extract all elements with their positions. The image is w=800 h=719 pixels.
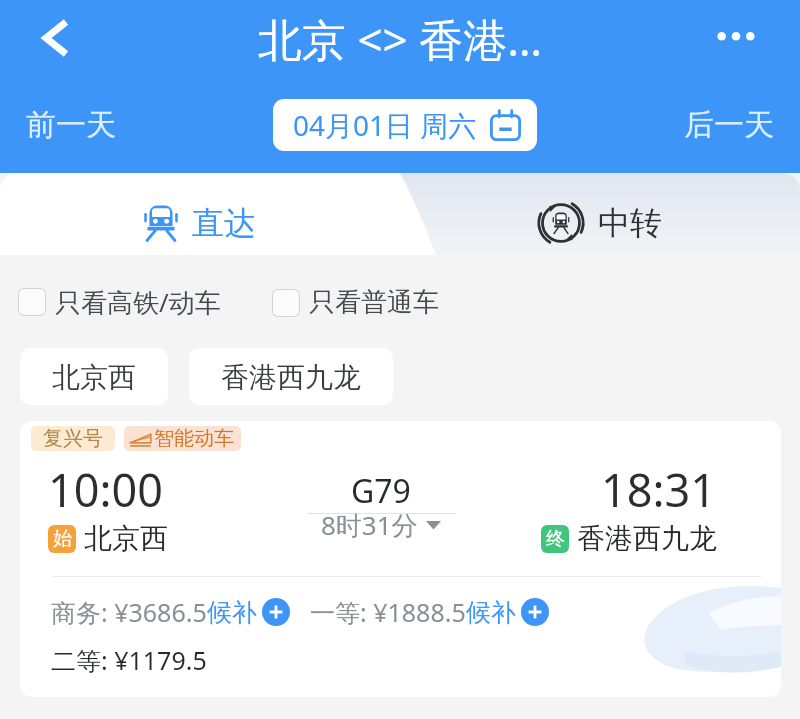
staticText: 直达 xyxy=(192,203,256,243)
staticText: 北京 <> 香港… xyxy=(258,9,543,69)
button[interactable]: 04月01日 周六 xyxy=(273,99,537,151)
staticText: 04月01日 周六 xyxy=(293,106,477,144)
staticText: 二等: ¥1179.5 xyxy=(51,643,207,677)
button[interactable]: More options xyxy=(708,10,764,66)
staticText: 香港西九龙 xyxy=(577,521,717,556)
staticText: 智能动车 xyxy=(154,426,234,451)
button[interactable]: Add waitlist xyxy=(262,598,290,626)
staticText: 10:00 xyxy=(48,459,164,520)
staticText: 后一天 xyxy=(684,106,774,144)
button[interactable]: 复兴号 xyxy=(20,421,781,697)
staticText: 18:31 xyxy=(601,459,717,520)
button[interactable]: 后一天 xyxy=(672,96,786,154)
staticText: 候补 xyxy=(207,597,257,628)
button[interactable]: 只看高铁/动车 xyxy=(10,276,229,328)
staticText: 商务: ¥3686.5 xyxy=(51,595,207,629)
staticText: 始 xyxy=(53,527,72,551)
staticText: 8时31分 xyxy=(321,507,418,543)
staticText: 香港西九龙 xyxy=(221,360,361,395)
button[interactable]: 只看普通车 xyxy=(264,278,447,327)
staticText: 一等: ¥1888.5 xyxy=(310,595,466,629)
button[interactable]: 北京西 xyxy=(20,348,168,405)
staticText: 候补 xyxy=(466,597,516,628)
staticText: 北京西 xyxy=(84,521,168,556)
staticText: 只看普通车 xyxy=(309,286,439,319)
staticText: 北京西 xyxy=(52,360,136,395)
button[interactable]: 中转 xyxy=(400,173,800,255)
staticText: 终 xyxy=(546,527,565,551)
button[interactable]: 香港西九龙 xyxy=(189,348,393,405)
staticText: 只看高铁/动车 xyxy=(55,284,221,320)
button[interactable]: 前一天 xyxy=(14,96,128,154)
button[interactable]: Add waitlist xyxy=(521,598,549,626)
staticText: 中转 xyxy=(598,203,662,243)
button[interactable]: 直达 xyxy=(0,173,400,255)
staticText: G79 xyxy=(351,469,411,513)
button[interactable]: Back xyxy=(29,11,83,65)
staticText: 复兴号 xyxy=(43,426,103,451)
staticText: 前一天 xyxy=(26,106,116,144)
